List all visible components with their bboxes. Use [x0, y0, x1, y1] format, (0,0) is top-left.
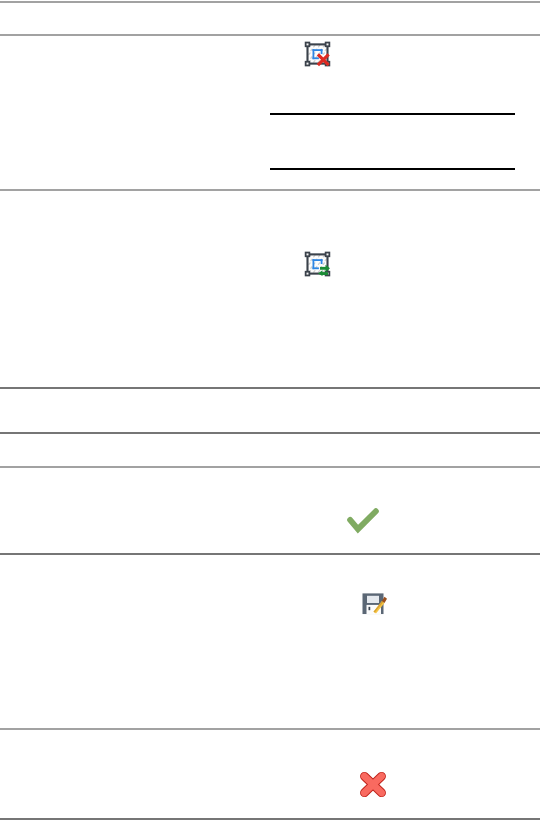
button[interactable]: Accept: [0, 468, 540, 553]
button[interactable]: Broken image: [305, 42, 330, 66]
button[interactable]: Save and edit: [0, 555, 540, 728]
button[interactable]: Save and edit: [362, 591, 387, 615]
button[interactable]: Broken image: [0, 36, 540, 189]
button[interactable]: Reload image: [305, 252, 330, 276]
button[interactable]: Delete: [0, 730, 540, 818]
button[interactable]: Accept: [349, 508, 377, 531]
button[interactable]: Reload image: [0, 191, 540, 387]
button[interactable]: Delete: [360, 772, 386, 797]
